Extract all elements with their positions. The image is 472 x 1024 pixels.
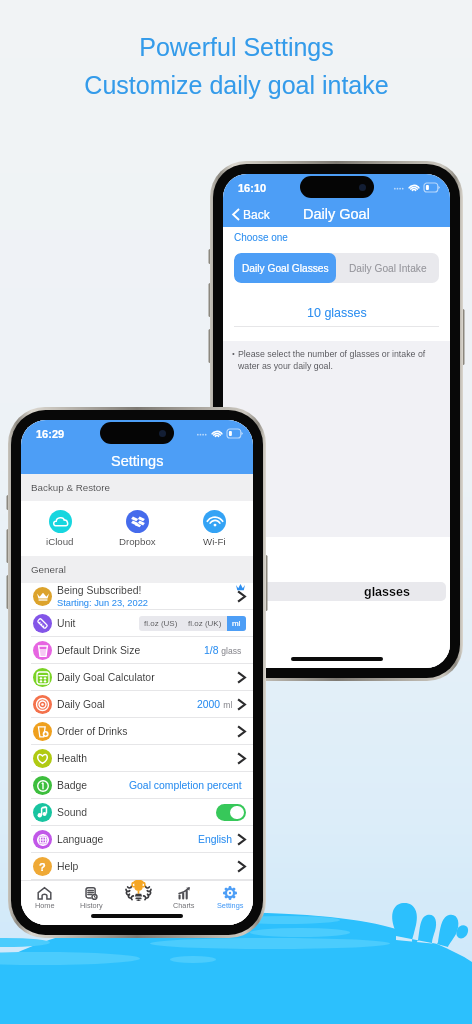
button[interactable]: Sound: [21, 799, 253, 826]
staticText: 11: [248, 605, 259, 616]
staticText: Being Subscribed!: [57, 585, 142, 597]
button[interactable]: Default Drink Size: [21, 637, 253, 664]
staticText: Daily Goal: [57, 699, 105, 711]
staticText: Choose one: [234, 232, 288, 243]
staticText: Daily Goal Glasses: [242, 263, 329, 274]
staticText: Sound: [57, 807, 88, 819]
staticText: Badge: [57, 780, 88, 792]
staticText: Settings: [111, 453, 164, 469]
button[interactable]: Unit: [21, 610, 253, 637]
staticText: Home: [35, 901, 55, 909]
button[interactable]: Back: [229, 206, 273, 223]
staticText: English: [198, 834, 233, 846]
staticText: Default Drink Size: [57, 645, 141, 657]
staticText: 12: [248, 623, 259, 633]
staticText: fl.oz (UK): [188, 619, 222, 628]
staticText: glasses: [364, 585, 410, 599]
button[interactable]: iCloud: [21, 510, 99, 547]
button[interactable]: Being Subscribed!: [21, 583, 253, 610]
staticText: Customize daily goal intake: [84, 71, 389, 99]
button[interactable]: Daily Goal Calculator: [21, 664, 253, 691]
staticText: 8: [248, 553, 254, 563]
staticText: Language: [57, 834, 104, 846]
button[interactable]: Daily Goal: [21, 691, 253, 718]
staticText: Unit: [57, 618, 76, 630]
staticText: Charts: [173, 901, 195, 909]
button[interactable]: Order of Drinks: [21, 718, 253, 745]
button[interactable]: Language: [21, 826, 253, 853]
staticText: glass: [219, 646, 242, 655]
staticText: History: [80, 901, 103, 909]
staticText: Powerful Settings: [139, 33, 334, 61]
staticText: Dropbox: [119, 536, 156, 547]
staticText: 16:10: [238, 182, 267, 194]
button[interactable]: Badge: [21, 772, 253, 799]
staticText: 13: [248, 638, 257, 647]
staticText: Help: [57, 861, 79, 873]
staticText: 10: [246, 585, 260, 599]
staticText: General: [31, 564, 66, 575]
button[interactable]: ?: [21, 853, 253, 880]
staticText: Health: [57, 753, 88, 765]
button[interactable]: Settings: [207, 881, 253, 914]
staticText: Daily Goal Calculator: [57, 672, 155, 684]
staticText: Order of Drinks: [57, 726, 128, 738]
staticText: iCloud: [46, 536, 74, 547]
button[interactable]: Health: [21, 745, 253, 772]
staticText: Daily Goal: [303, 206, 370, 222]
staticText: Starting: Jun 23, 2022: [57, 598, 148, 608]
staticText: Back: [243, 208, 270, 221]
button[interactable]: Daily Goal Glasses: [234, 253, 336, 283]
button[interactable]: Charts: [161, 881, 207, 914]
button[interactable]: Daily Goal Intake: [336, 253, 439, 283]
button[interactable]: Dropbox: [99, 510, 176, 547]
staticText: Wi-Fi: [203, 536, 226, 547]
button[interactable]: History: [68, 881, 115, 914]
staticText: 16:29: [36, 428, 65, 440]
staticText: 2000: [197, 699, 221, 711]
staticText: Goal completion percent: [129, 780, 242, 792]
staticText: fl.oz (US): [144, 619, 178, 628]
staticText: ml: [232, 619, 241, 628]
staticText: •: [232, 349, 235, 358]
button[interactable]: Achievements: [115, 881, 161, 914]
staticText: Settings: [217, 901, 244, 909]
button[interactable]: Home: [21, 881, 68, 914]
button[interactable]: Sound toggle: [216, 804, 246, 821]
staticText: ml: [221, 700, 233, 709]
staticText: 9: [248, 568, 254, 579]
staticText: Daily Goal Intake: [349, 263, 427, 274]
staticText: Please select the number of glasses or i…: [238, 349, 440, 370]
staticText: Backup & Restore: [31, 482, 110, 493]
button[interactable]: Wi-Fi: [176, 510, 253, 547]
staticText: ?: [39, 861, 46, 873]
staticText: 1/8: [204, 645, 219, 657]
staticText: 10 glasses: [307, 306, 367, 320]
